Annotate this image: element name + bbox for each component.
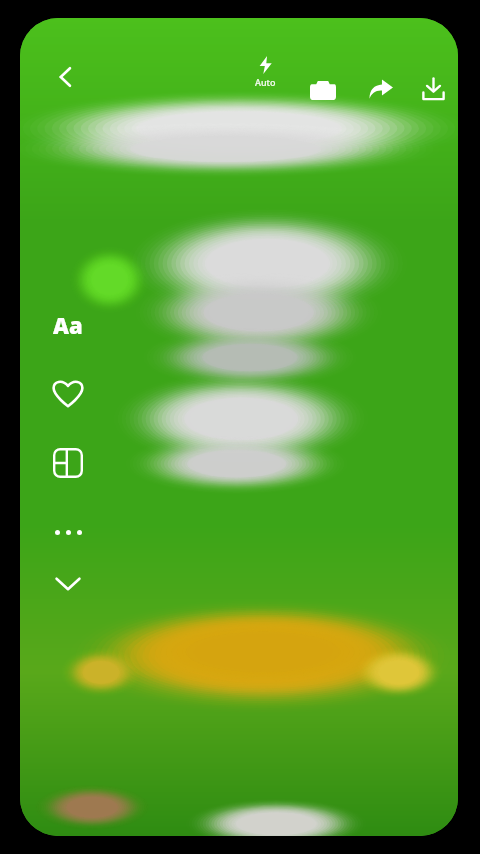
button[interactable]: Flash auto [242,56,288,104]
button[interactable]: Camera [300,66,346,112]
button[interactable]: Share [358,66,404,112]
button[interactable]: Aa [40,300,96,350]
button[interactable]: Collapse [40,558,96,608]
button[interactable]: Favorite [40,367,96,419]
button[interactable]: Back [42,53,90,101]
button[interactable]: More options [40,509,96,555]
staticText: Aa [53,310,83,340]
staticText: Auto [255,76,276,88]
button[interactable]: Layout [40,436,96,490]
button[interactable]: Download [410,66,456,112]
